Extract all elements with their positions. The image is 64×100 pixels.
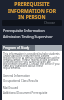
button[interactable]: Program of Study	[2, 45, 35, 51]
button[interactable]: Select course	[2, 20, 62, 26]
button[interactable]: Admission Testing Supervisor	[3, 34, 53, 39]
staticText: This information is provided to help stu…	[3, 52, 61, 70]
button[interactable]: Prerequisite Information	[3, 28, 45, 33]
button[interactable]: Mail Issued	[3, 86, 18, 90]
button[interactable]: Additional Document Prerequisite	[3, 91, 48, 95]
button[interactable]: Occupational Class Results	[3, 79, 38, 83]
staticText: Choose	[44, 21, 56, 25]
staticText: PREREQUISITE INFORMATION FOR IN PERSON	[0, 1, 64, 20]
button[interactable]: General Information	[3, 74, 30, 78]
staticText: Program of Study	[3, 46, 30, 50]
